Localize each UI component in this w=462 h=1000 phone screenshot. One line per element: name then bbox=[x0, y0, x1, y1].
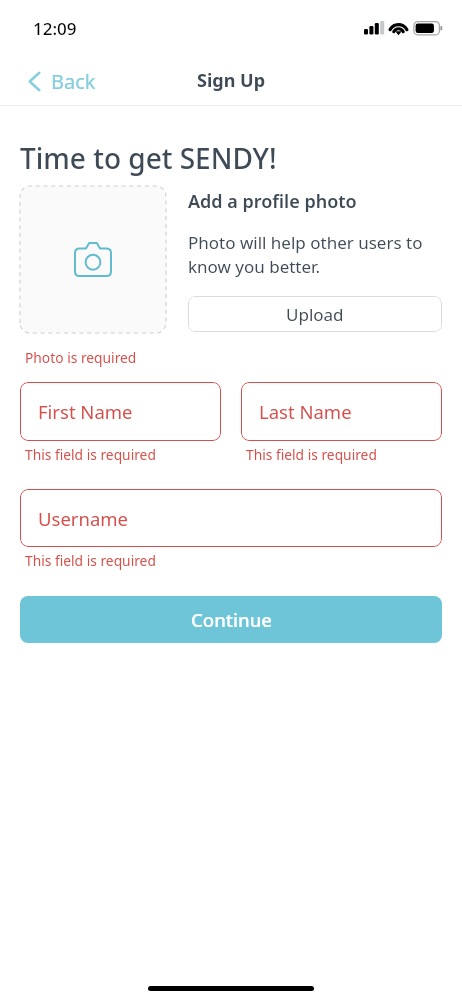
staticText: Sign Up bbox=[0, 68, 462, 93]
button[interactable]: Username bbox=[20, 489, 442, 547]
button[interactable]: Last Name bbox=[241, 382, 442, 441]
staticText: Photo will help other users to know you … bbox=[188, 231, 433, 278]
button[interactable]: Add a profile photo bbox=[20, 186, 166, 333]
staticText: This field is required bbox=[246, 445, 377, 464]
staticText: This field is required bbox=[25, 445, 156, 464]
staticText: Photo is required bbox=[25, 348, 137, 367]
button[interactable]: Back bbox=[24, 63, 101, 100]
staticText: First Name bbox=[38, 399, 133, 424]
button[interactable]: Continue bbox=[20, 596, 442, 643]
staticText: Upload bbox=[286, 303, 344, 326]
staticText: This field is required bbox=[25, 551, 156, 570]
staticText: Back bbox=[51, 68, 96, 95]
staticText: 12:09 bbox=[33, 17, 77, 40]
staticText: Continue bbox=[191, 607, 272, 632]
button[interactable]: Upload bbox=[188, 296, 442, 332]
staticText: Username bbox=[38, 506, 129, 531]
staticText: Add a profile photo bbox=[188, 189, 357, 214]
staticText: Last Name bbox=[259, 399, 352, 424]
button[interactable]: First Name bbox=[20, 382, 221, 441]
staticText: Time to get SENDY! bbox=[20, 139, 277, 177]
